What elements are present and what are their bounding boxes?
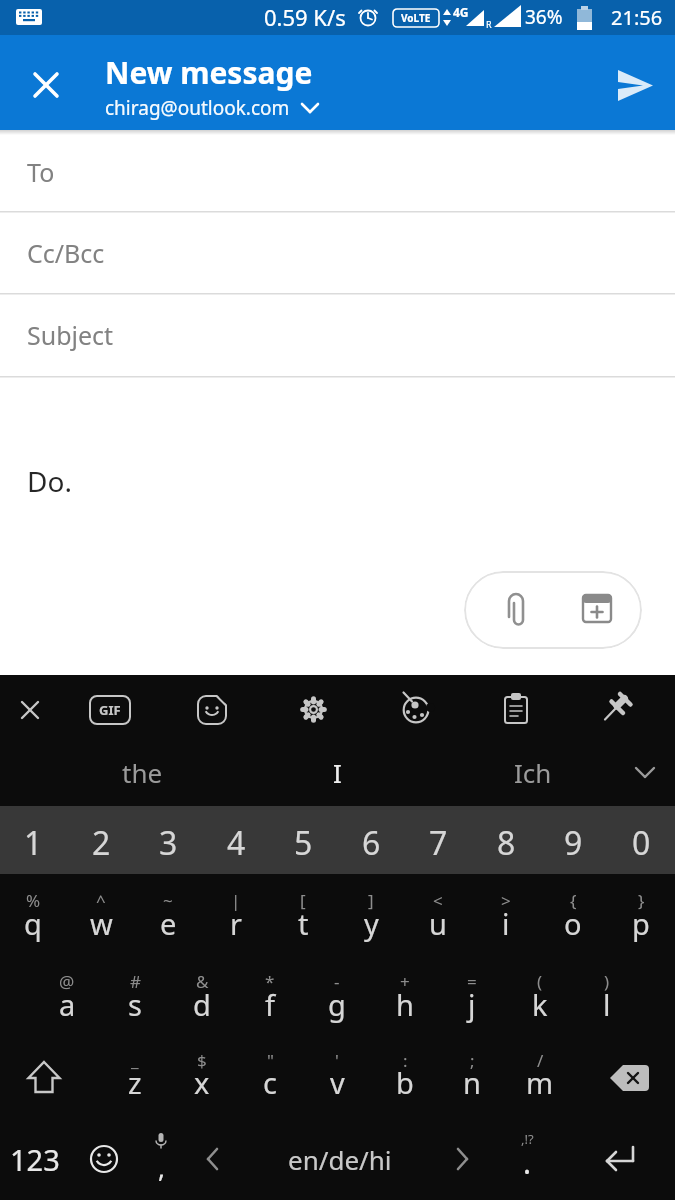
staticText: y (364, 904, 379, 943)
staticText: " (267, 1049, 274, 1072)
button[interactable]: d (52, 964, 352, 1044)
button[interactable] (490, 683, 542, 735)
staticText: Do. (27, 462, 72, 500)
staticText: GIF (99, 701, 121, 719)
button[interactable]: the (0, 732, 292, 812)
staticText: 21:56 (611, 4, 663, 31)
button[interactable]: 7 (288, 803, 588, 883)
button[interactable]: t (153, 883, 453, 963)
button[interactable]: I (187, 732, 487, 812)
staticText: New message (105, 52, 313, 93)
button[interactable]: u (288, 883, 588, 963)
button[interactable]: l (457, 964, 675, 1044)
button[interactable]: 9 (423, 803, 675, 883)
button[interactable]: en/de/hi (190, 1119, 490, 1199)
staticText: 123 (10, 1140, 60, 1179)
staticText: 36% (525, 4, 563, 30)
button[interactable] (464, 571, 642, 649)
staticText: 0.59 K/s (264, 2, 346, 32)
button[interactable]: . (377, 1122, 675, 1200)
button[interactable] (389, 683, 441, 735)
staticText: d (193, 985, 211, 1024)
staticText: j (468, 985, 476, 1024)
button[interactable] (18, 1052, 70, 1104)
staticText: 1 (24, 821, 43, 865)
button[interactable]: s (0, 964, 285, 1044)
button[interactable] (592, 683, 644, 735)
button[interactable]: 3 (18, 803, 318, 883)
staticText: 7 (429, 821, 448, 865)
button[interactable]: k (390, 964, 675, 1044)
button[interactable]: z (0, 1042, 285, 1122)
button[interactable]: a (0, 964, 217, 1044)
button[interactable]: b (255, 1042, 555, 1122)
button[interactable]: e (18, 883, 318, 963)
button[interactable]: j (322, 964, 622, 1044)
button[interactable] (4, 683, 56, 735)
button[interactable]: w (0, 883, 251, 963)
button[interactable]: Ich (383, 732, 675, 812)
staticText: e (160, 904, 177, 943)
button[interactable] (610, 59, 662, 111)
staticText: o (564, 904, 582, 943)
button[interactable]: 5 (153, 803, 453, 883)
staticText: 9 (564, 821, 583, 865)
staticText: q (24, 904, 42, 943)
button[interactable]: q (0, 883, 183, 963)
button[interactable]: 4 (86, 803, 386, 883)
button[interactable]: 8 (356, 803, 656, 883)
staticText: 4 (227, 821, 246, 865)
button[interactable] (84, 683, 136, 735)
button[interactable] (0, 294, 675, 377)
button[interactable]: 1 (0, 803, 183, 883)
button[interactable] (287, 683, 339, 735)
staticText: _ (131, 1049, 139, 1072)
staticText: w (90, 904, 113, 943)
staticText: ; (470, 1049, 475, 1072)
staticText: x (194, 1063, 210, 1102)
button[interactable]: c (120, 1042, 420, 1122)
staticText: z (128, 1063, 142, 1102)
staticText: { (570, 889, 577, 912)
button[interactable]: i (356, 883, 656, 963)
staticText: . (523, 1142, 532, 1183)
button[interactable]: , (11, 1127, 311, 1200)
button[interactable]: g (187, 964, 487, 1044)
button[interactable]: 6 (221, 803, 521, 883)
staticText: i (502, 904, 510, 943)
staticText: n (463, 1063, 481, 1102)
staticText: # (130, 970, 141, 993)
staticText: [ (300, 889, 306, 912)
staticText: s (128, 985, 142, 1024)
button[interactable]: r (86, 883, 386, 963)
button[interactable]: 0 (491, 803, 675, 883)
staticText: = (467, 970, 477, 993)
button[interactable]: 123 (0, 1119, 185, 1199)
button[interactable]: h (255, 964, 555, 1044)
staticText: I (333, 755, 342, 790)
button[interactable]: x (52, 1042, 352, 1122)
staticText: 5 (294, 821, 313, 865)
staticText: + (400, 970, 410, 993)
button[interactable] (0, 130, 675, 212)
staticText: the (122, 755, 163, 790)
button[interactable] (604, 1052, 656, 1104)
staticText: f (265, 985, 275, 1024)
button[interactable]: f (120, 964, 420, 1044)
staticText: Ich (514, 755, 552, 790)
button[interactable] (78, 1133, 130, 1185)
button[interactable]: n (322, 1042, 622, 1122)
button[interactable]: y (221, 883, 521, 963)
staticText: m (526, 1063, 554, 1102)
button[interactable] (594, 1133, 646, 1185)
button[interactable] (186, 683, 238, 735)
button[interactable] (0, 212, 675, 294)
staticText: ) (604, 970, 610, 993)
staticText: / (537, 1049, 544, 1072)
button[interactable]: v (187, 1042, 487, 1122)
button[interactable]: p (491, 883, 675, 963)
button[interactable] (20, 59, 72, 111)
button[interactable]: 2 (0, 803, 251, 883)
button[interactable]: o (423, 883, 675, 963)
button[interactable]: m (390, 1042, 675, 1122)
